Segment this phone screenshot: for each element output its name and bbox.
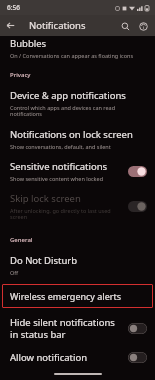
button[interactable]: Help [135, 16, 152, 36]
button[interactable]: Toggle [128, 166, 147, 177]
button[interactable]: Device & app notifications [0, 84, 155, 123]
button[interactable]: Search [115, 16, 135, 36]
staticText: Bubbles [10, 37, 47, 50]
button[interactable]: Back [0, 15, 21, 36]
staticText: Hide silent notifications in status bar [10, 316, 122, 341]
staticText: Do Not Disturb [10, 254, 78, 267]
staticText: Show conversations, default, and silent [10, 143, 111, 150]
staticText: Show sensitive content when locked [10, 175, 104, 182]
button[interactable]: Hide silent notifications in status bar [0, 311, 155, 346]
staticText: Allow notification snoozing [10, 351, 122, 363]
button[interactable]: Toggle [128, 201, 147, 212]
button[interactable]: Sensitive notifications [0, 155, 155, 187]
button[interactable]: Toggle [128, 323, 147, 334]
staticText: Sensitive notifications [10, 160, 108, 173]
staticText: Device & app notifications [10, 89, 126, 102]
staticText: Control which apps and devices can read … [10, 104, 145, 118]
button[interactable]: Allow notification snoozing [0, 346, 155, 368]
button[interactable]: Wireless emergency alerts [2, 284, 153, 308]
staticText: 6:56 [7, 3, 20, 12]
staticText: Notifications [29, 19, 115, 32]
button[interactable]: Skip lock screen [0, 187, 155, 226]
staticText: General [10, 236, 33, 244]
staticText: Privacy [10, 71, 31, 79]
button[interactable]: Toggle [128, 352, 147, 363]
staticText: On / Conversations can appear as floatin… [10, 52, 134, 59]
staticText: Notifications on lock screen [10, 128, 133, 141]
staticText: Skip lock screen [10, 192, 81, 205]
button[interactable]: Notifications on lock screen [0, 123, 155, 155]
button[interactable]: Do Not Disturb [0, 249, 155, 281]
staticText: Wireless emergency alerts [10, 290, 122, 302]
staticText: Off [10, 269, 19, 276]
staticText: After unlocking, go directly to last use… [10, 207, 122, 221]
